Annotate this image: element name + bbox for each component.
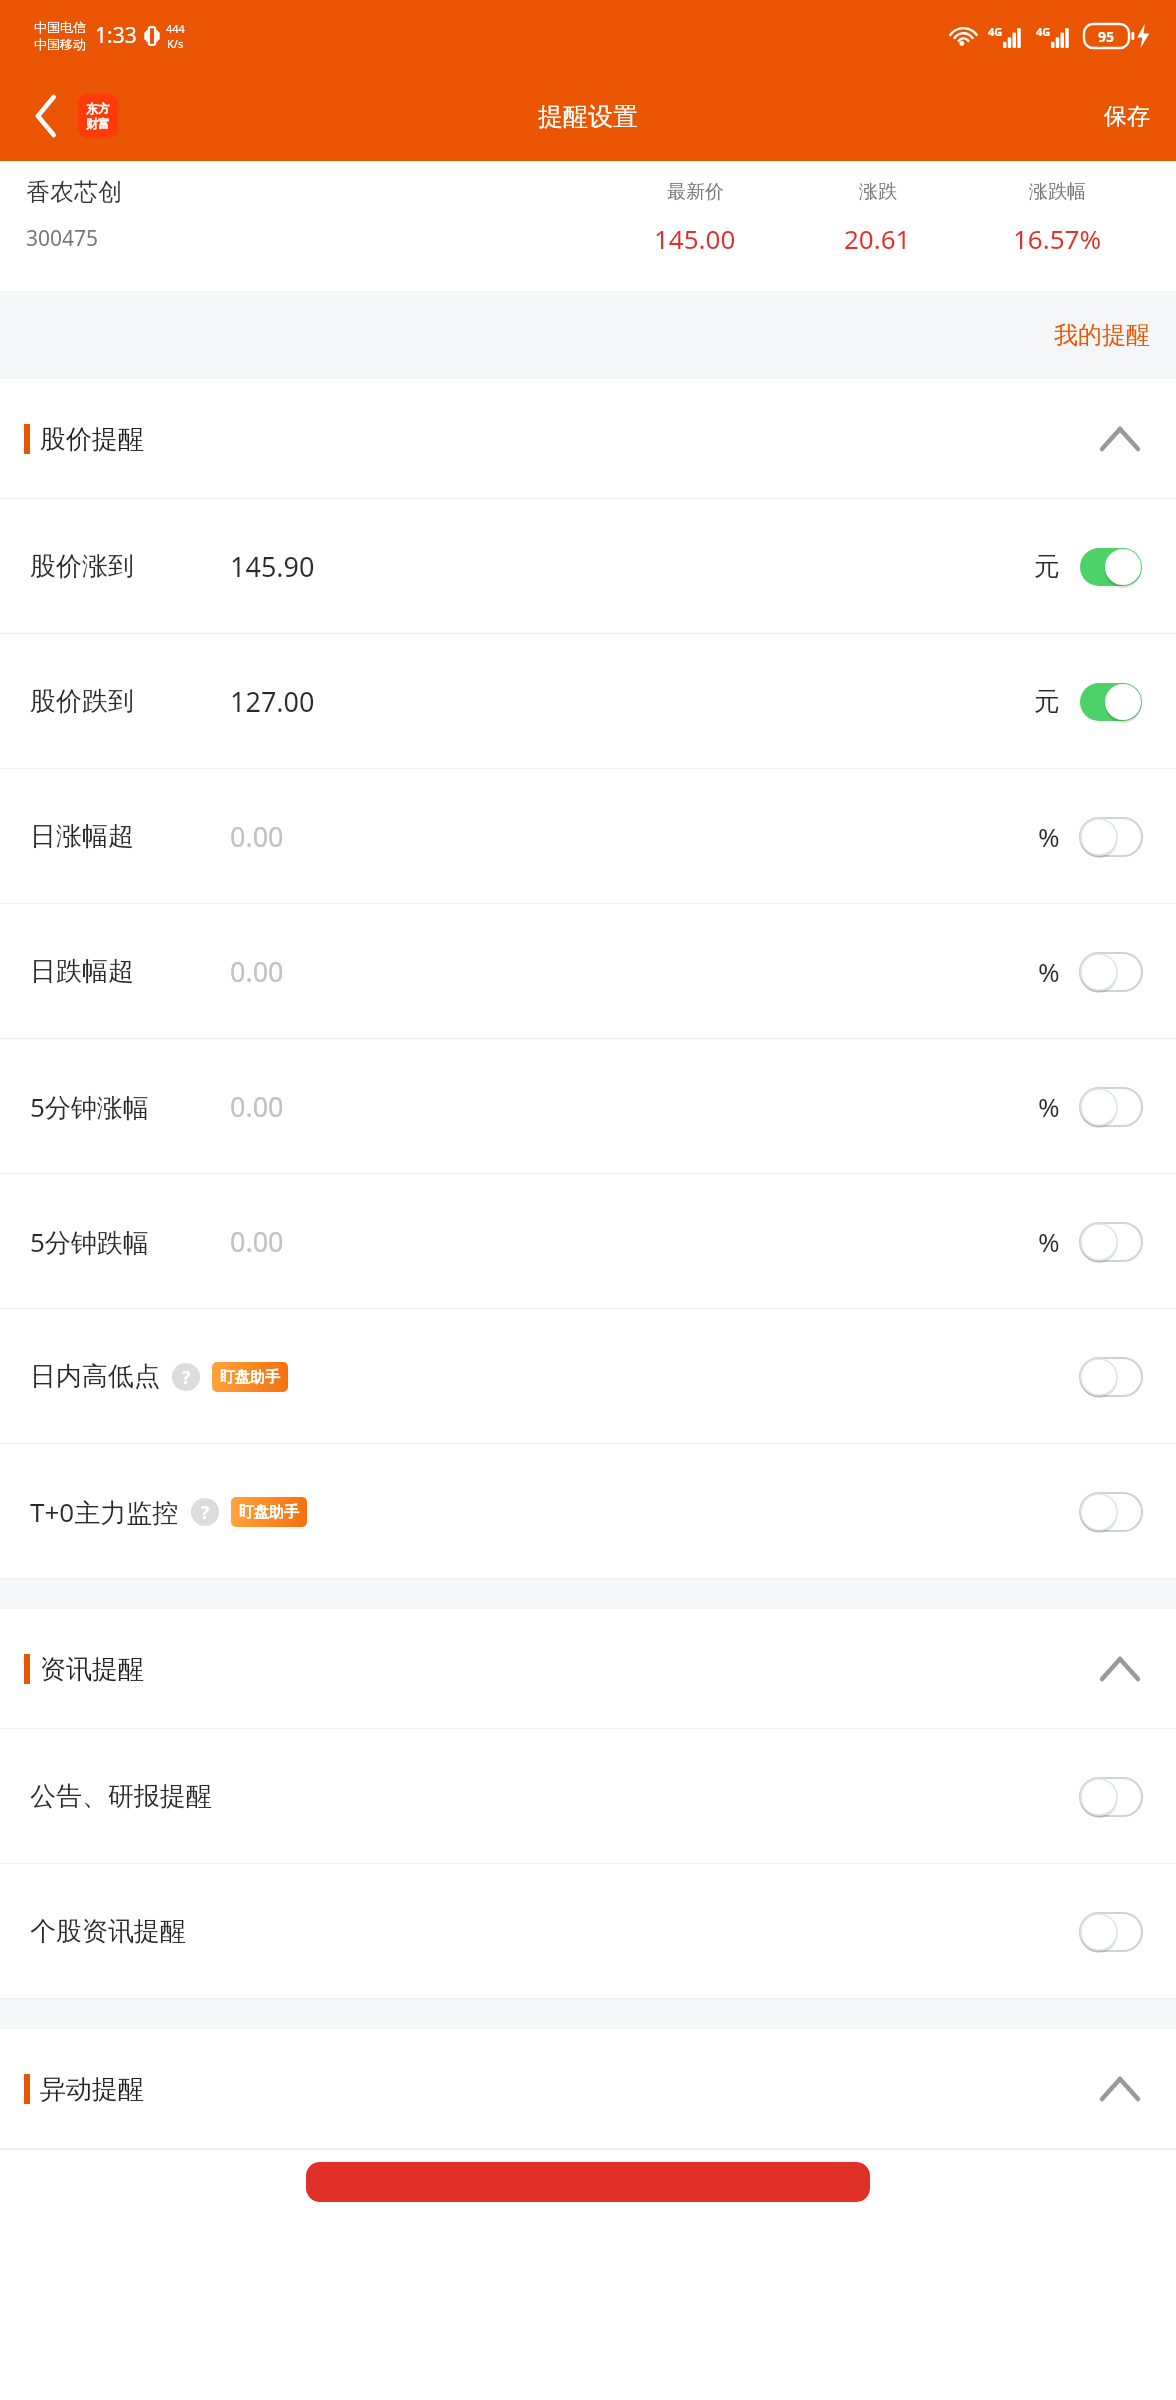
staticText: 资讯提醒: [40, 1653, 144, 1686]
staticText: 20.61: [844, 221, 911, 256]
staticText: 中国移动: [34, 36, 86, 52]
other: Collapse: [1092, 411, 1148, 467]
staticText: 最新价: [667, 180, 724, 204]
staticText: 0.00: [230, 1223, 284, 1260]
staticText: 个股资讯提醒: [30, 1915, 186, 1948]
staticText: 145.00: [654, 221, 736, 256]
button[interactable]: Back: [18, 87, 76, 145]
button[interactable]: Off: [1080, 1493, 1142, 1531]
staticText: 300475: [26, 224, 99, 253]
staticText: 我的提醒: [1054, 320, 1150, 350]
staticText: 日跌幅超: [30, 955, 134, 988]
button[interactable]: Off: [1080, 1358, 1142, 1396]
button[interactable]: Off: [1080, 1223, 1142, 1261]
staticText: 日内高低点: [30, 1360, 160, 1393]
staticText: 盯盘助手: [220, 1368, 280, 1387]
staticText: 元: [1034, 550, 1060, 583]
staticText: 127.00: [230, 683, 315, 720]
button[interactable]: 股价涨到: [0, 499, 1176, 634]
button[interactable]: On: [1080, 683, 1142, 721]
staticText: 0.00: [230, 1088, 284, 1125]
button[interactable]: 日内高低点: [0, 1309, 1176, 1444]
staticText: %: [1038, 1089, 1060, 1124]
button[interactable]: Off: [1080, 818, 1142, 856]
button[interactable]: 股价提醒: [0, 379, 1176, 499]
button[interactable]: 日跌幅超: [0, 904, 1176, 1039]
staticText: 1:33: [95, 21, 137, 50]
other: Collapse: [1092, 2061, 1148, 2117]
button[interactable]: Off: [1080, 953, 1142, 991]
staticText: 公告、研报提醒: [30, 1780, 212, 1813]
staticText: T+0主力监控: [30, 1494, 179, 1530]
staticText: 股价跌到: [30, 685, 134, 718]
staticText: ?: [201, 1501, 210, 1524]
button[interactable]: 异动提醒: [0, 2029, 1176, 2149]
staticText: 145.90: [230, 548, 315, 585]
button[interactable]: 个股资讯提醒: [0, 1864, 1176, 1999]
staticText: 财富: [86, 116, 110, 131]
staticText: 股价涨到: [30, 550, 134, 583]
staticText: 5分钟涨幅: [30, 1089, 149, 1125]
staticText: 0.00: [230, 818, 284, 855]
staticText: %: [1038, 1224, 1060, 1259]
staticText: 涨跌: [859, 180, 897, 204]
staticText: 元: [1034, 685, 1060, 718]
button[interactable]: T+0主力监控: [0, 1444, 1176, 1579]
button[interactable]: Off: [1080, 1913, 1142, 1951]
button[interactable]: [306, 2162, 870, 2202]
button[interactable]: 公告、研报提醒: [0, 1729, 1176, 1864]
button[interactable]: Off: [1080, 1088, 1142, 1126]
button[interactable]: 我的提醒: [1028, 291, 1176, 379]
staticText: 16.57%: [1013, 221, 1102, 256]
staticText: 4G: [1036, 24, 1051, 39]
staticText: K/s: [167, 36, 184, 51]
staticText: 中国电信: [34, 19, 86, 35]
staticText: 股价提醒: [40, 423, 144, 456]
staticText: 异动提醒: [40, 2073, 144, 2106]
button[interactable]: 股价跌到: [0, 634, 1176, 769]
button[interactable]: 东方财富: [78, 94, 118, 138]
staticText: 95: [1098, 27, 1115, 46]
staticText: %: [1038, 819, 1060, 854]
button[interactable]: Off: [1080, 1778, 1142, 1816]
staticText: 保存: [1104, 102, 1150, 131]
staticText: 香农芯创: [26, 177, 122, 207]
button[interactable]: 保存: [1078, 71, 1176, 161]
staticText: 0.00: [230, 953, 284, 990]
button[interactable]: Help: [172, 1363, 200, 1391]
staticText: 涨跌幅: [1029, 180, 1086, 204]
staticText: 5分钟跌幅: [30, 1224, 149, 1260]
staticText: 提醒设置: [538, 101, 638, 132]
button[interactable]: 日涨幅超: [0, 769, 1176, 904]
staticText: 东方: [86, 101, 110, 116]
button[interactable]: 5分钟跌幅: [0, 1174, 1176, 1309]
staticText: %: [1038, 954, 1060, 989]
staticText: 盯盘助手: [239, 1503, 299, 1522]
staticText: 4G: [988, 24, 1003, 39]
button[interactable]: 5分钟涨幅: [0, 1039, 1176, 1174]
staticText: 444: [166, 21, 185, 36]
button[interactable]: 资讯提醒: [0, 1609, 1176, 1729]
button[interactable]: Help: [191, 1498, 219, 1526]
staticText: ?: [182, 1366, 191, 1389]
staticText: 日涨幅超: [30, 820, 134, 853]
other: Collapse: [1092, 1641, 1148, 1697]
button[interactable]: On: [1080, 548, 1142, 586]
